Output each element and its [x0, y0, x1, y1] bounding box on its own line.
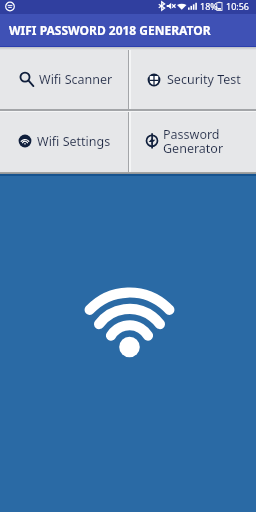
staticText: Wifi Settings — [37, 133, 111, 150]
button[interactable]: Wifi Scanner — [0, 50, 128, 109]
button[interactable]: Wifi Settings — [0, 112, 128, 172]
button[interactable]: Security Test — [131, 50, 256, 109]
button[interactable]: Password Generator — [131, 112, 256, 172]
staticText: WIFI PASSWORD 2018 GENERATOR — [9, 22, 211, 38]
staticText: 18% — [200, 0, 218, 12]
staticText: Security Test — [167, 71, 241, 88]
staticText: 10:56 — [226, 0, 250, 12]
staticText: Password Generator — [163, 126, 224, 157]
staticText: Wifi Scanner — [39, 71, 113, 88]
